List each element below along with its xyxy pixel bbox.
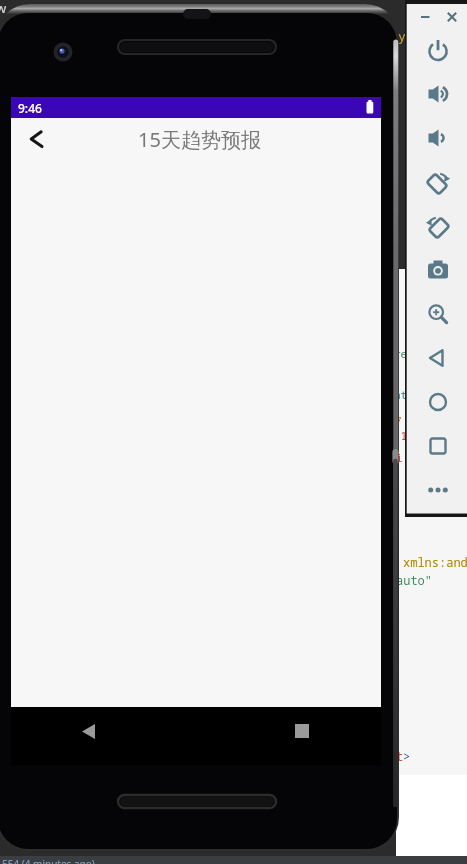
staticText: 554 (4 minutes ago) [2,857,95,864]
button[interactable] [416,425,460,467]
button[interactable] [416,381,460,423]
button[interactable] [416,337,460,379]
button[interactable] [417,9,435,25]
button[interactable] [18,121,54,157]
staticText: re [394,346,408,361]
button[interactable] [416,73,460,115]
button[interactable] [416,29,460,71]
staticText: xmlns:and [403,554,467,570]
button[interactable] [444,9,462,25]
staticText: > [403,748,411,764]
staticText: y [398,27,406,45]
staticText: i [396,450,403,465]
staticText: 7 [395,413,402,428]
button[interactable] [416,205,460,247]
button[interactable] [74,716,102,746]
button[interactable] [416,249,460,291]
button[interactable] [416,117,460,159]
staticText: t [396,748,404,764]
button[interactable] [288,716,316,746]
staticText: nt [394,387,408,402]
staticText: 9:46 [18,100,42,116]
button[interactable] [416,469,460,511]
staticText: :1 [394,428,408,443]
staticText: auto" [396,572,433,588]
button[interactable] [416,293,460,335]
staticText: w [0,0,7,17]
button[interactable] [416,161,460,203]
staticText: 15天趋势预报 [138,126,261,153]
